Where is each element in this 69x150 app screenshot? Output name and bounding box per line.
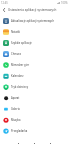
staticText: Galeria (11, 107, 20, 111)
button[interactable]: Szybkie aplikacje (0, 37, 69, 48)
button[interactable]: Kalendarz (0, 70, 69, 81)
button[interactable]: Tryb dzieciecy (0, 81, 69, 92)
staticText: Szybkie aplikacje (11, 41, 32, 45)
button[interactable]: Wstecz (0, 6, 8, 14)
staticText: Menedzer gier (11, 63, 29, 67)
button[interactable]: Ekran glowny (30, 139, 38, 147)
button[interactable]: Menedzer gier (0, 59, 69, 70)
staticText: 100% (61, 1, 68, 5)
button[interactable]: Chmura (0, 48, 69, 59)
staticText: 12:45 (1, 1, 8, 5)
button[interactable]: Ostatnie (14, 139, 22, 147)
staticText: Notatki (11, 30, 21, 34)
staticText: Aparat (11, 96, 20, 100)
staticText: Muzyka (11, 118, 21, 122)
staticText: Kalendarz (11, 74, 24, 78)
button[interactable]: Aparat (0, 92, 69, 103)
button[interactable]: Muzyka (0, 114, 69, 125)
staticText: Przegladarka (11, 129, 28, 133)
button[interactable]: Przegladarka (0, 125, 69, 136)
staticText: Chmura (11, 52, 21, 56)
button[interactable]: Galeria (0, 103, 69, 114)
staticText: Aktualizacje aplikacji systemowych (11, 19, 55, 23)
staticText: Tryb dzieciecy (11, 85, 29, 89)
staticText: Ustawienia aplikacji systemowych (8, 8, 57, 12)
button[interactable]: Notatki (0, 26, 69, 37)
button[interactable]: Wstecz (46, 139, 54, 147)
button[interactable]: Aktualizacje aplikacji systemowych (0, 15, 69, 26)
